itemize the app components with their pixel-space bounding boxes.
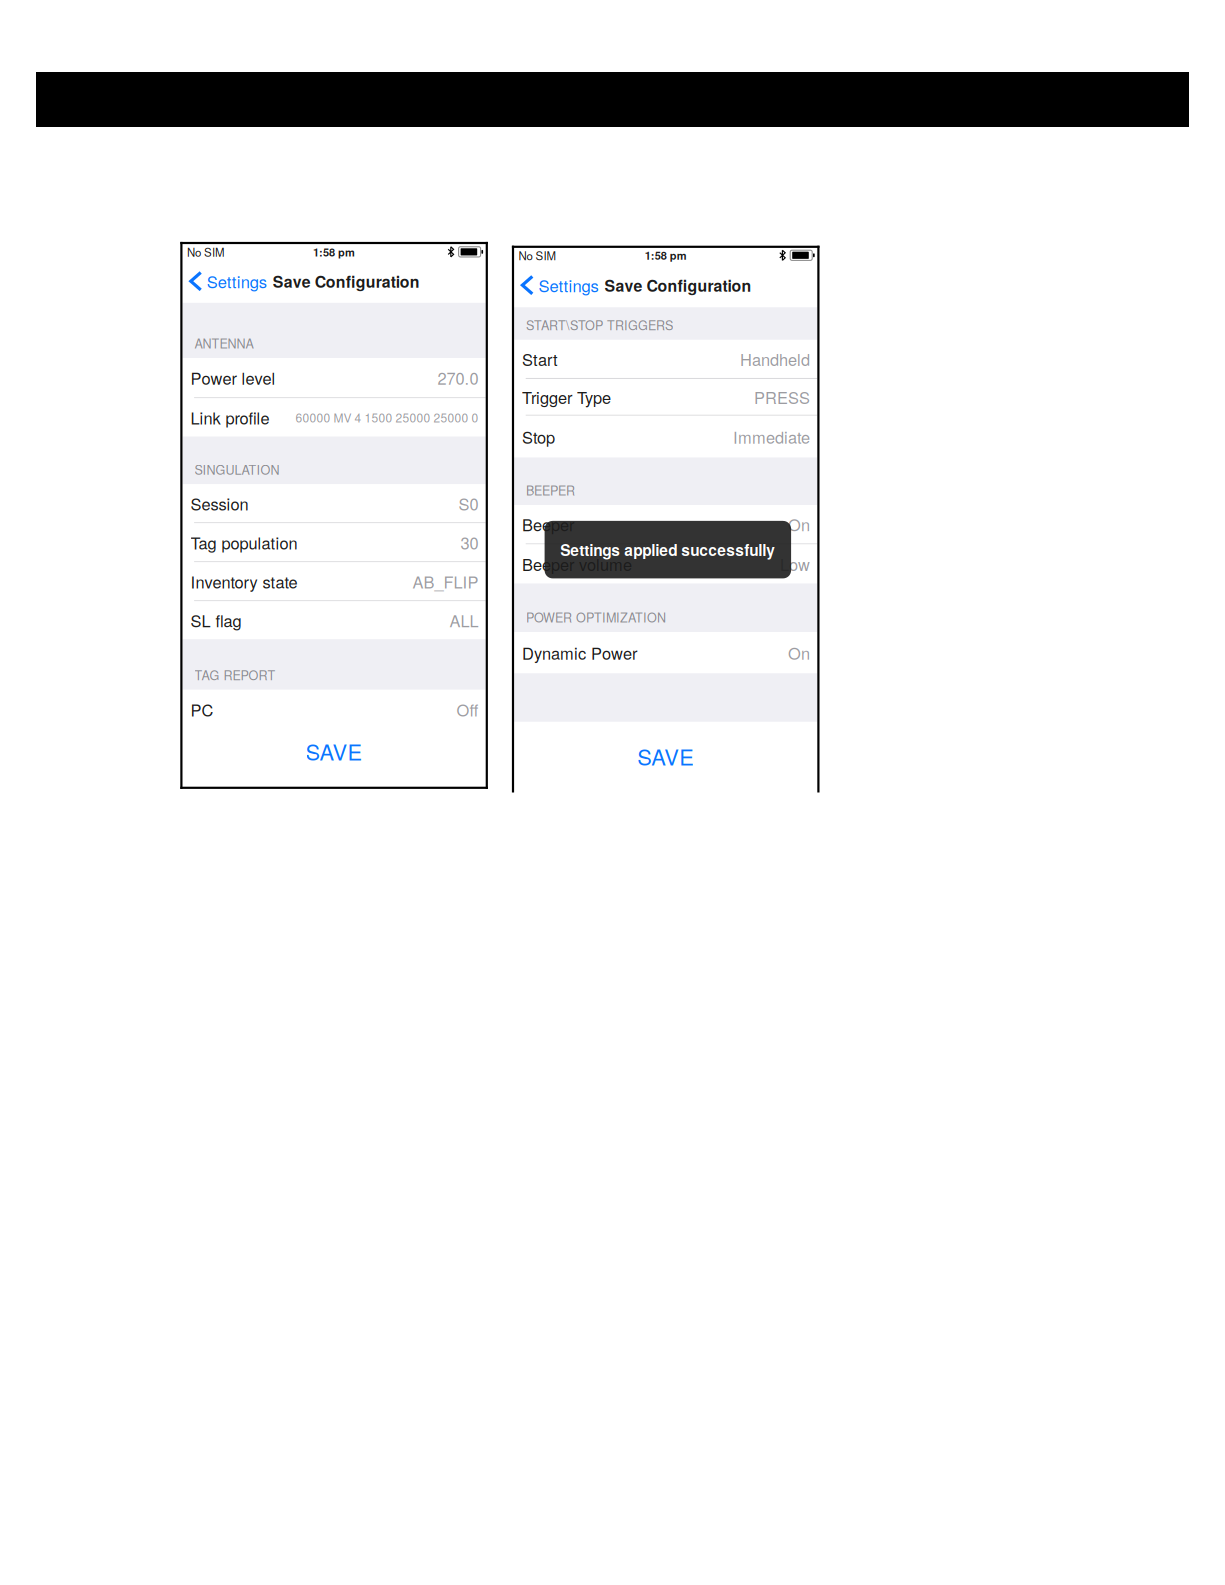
button[interactable]: SAVE (182, 729, 486, 786)
button[interactable]: Beeper volume (514, 544, 817, 583)
staticText: 1:58 pm (645, 247, 687, 263)
staticText: TAG REPORT (194, 666, 275, 684)
staticText: 60000 MV 4 1500 25000 25000 0 (295, 409, 478, 426)
staticText: Immediate (733, 425, 810, 448)
staticText: Off (456, 698, 478, 721)
staticText: Settings (207, 269, 267, 293)
button[interactable]: Inventory state (182, 562, 486, 600)
staticText: Settings (538, 273, 598, 297)
staticText: SAVE (637, 740, 694, 772)
button[interactable]: Stop (514, 416, 817, 457)
staticText: PC (190, 698, 213, 721)
staticText: Save Configuration (604, 274, 751, 296)
staticText: POWER OPTIMIZATION (526, 608, 666, 626)
staticText: 1:58 pm (313, 244, 355, 260)
button[interactable]: Link profile (182, 398, 486, 436)
staticText: SINGULATION (194, 460, 279, 478)
staticText: Session (190, 492, 248, 515)
staticText: AB_FLIP (412, 570, 478, 593)
button[interactable]: Tag population (182, 523, 486, 561)
staticText: BEEPER (526, 481, 575, 499)
staticText: On (788, 641, 810, 664)
staticText: ANTENNA (194, 334, 253, 352)
staticText: Handheld (740, 347, 810, 371)
staticText: Stop (522, 425, 555, 448)
button[interactable]: SAVE (514, 722, 817, 791)
staticText: Settings applied successfully (560, 539, 775, 561)
button[interactable]: Beeper (514, 505, 817, 543)
staticText: Trigger Type (522, 385, 611, 409)
staticText: No SIM (187, 244, 225, 260)
button[interactable]: Trigger Type (514, 379, 817, 415)
button[interactable]: Session (182, 484, 486, 522)
staticText: SL flag (190, 608, 241, 632)
button[interactable]: Start (514, 340, 817, 378)
button[interactable]: Dynamic Power (514, 632, 817, 673)
staticText: Inventory state (190, 570, 297, 593)
staticText: SAVE (306, 735, 363, 767)
staticText: Low (780, 552, 810, 576)
staticText: On (788, 512, 810, 536)
staticText: Beeper volume (522, 552, 632, 576)
staticText: START\STOP TRIGGERS (526, 316, 673, 334)
staticText: Save Configuration (273, 270, 420, 292)
staticText: PRESS (754, 385, 810, 409)
staticText: Power level (190, 366, 275, 389)
staticText: Link profile (190, 406, 269, 429)
staticText: S0 (458, 492, 478, 515)
staticText: Tag population (190, 531, 297, 554)
staticText: No SIM (519, 247, 557, 263)
staticText: Start (522, 347, 558, 371)
staticText: ALL (449, 608, 478, 632)
button[interactable]: Power level (182, 358, 486, 397)
staticText: Dynamic Power (522, 641, 637, 664)
staticText: Beeper (522, 512, 574, 536)
staticText: 30 (460, 531, 478, 554)
button[interactable]: Settings (514, 263, 600, 307)
button[interactable]: SL flag (182, 601, 486, 639)
button[interactable]: Settings (182, 260, 269, 303)
button[interactable]: PC (182, 690, 486, 729)
staticText: 270.0 (437, 366, 478, 389)
